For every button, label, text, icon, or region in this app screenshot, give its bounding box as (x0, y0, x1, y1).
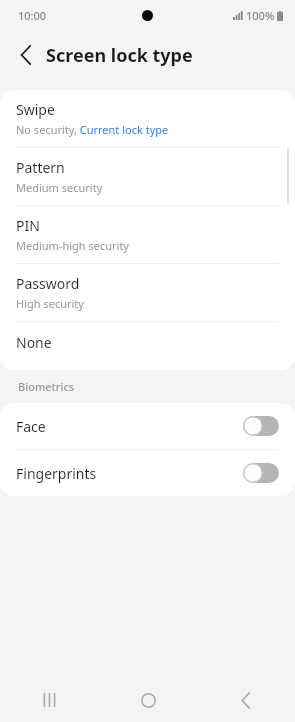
staticText: Password (16, 274, 80, 293)
staticText: Swipe (16, 100, 55, 119)
staticText: PIN (16, 216, 40, 235)
staticText: Screen lock type (46, 43, 193, 68)
button[interactable]: Swipe (0, 90, 295, 147)
staticText: Medium-high security (16, 238, 129, 253)
staticText: No security, Current lock type (16, 122, 169, 137)
button[interactable]: Fingerprints (0, 450, 295, 496)
staticText: 100% (246, 8, 275, 23)
button[interactable]: Home (99, 678, 197, 722)
button[interactable]: Recents (0, 678, 99, 722)
staticText: None (16, 333, 52, 352)
staticText: Biometrics (18, 379, 75, 394)
button[interactable]: PIN (0, 206, 295, 263)
staticText: High security (16, 296, 84, 311)
button[interactable]: None (0, 322, 295, 362)
button[interactable]: Password (0, 264, 295, 321)
button[interactable]: Pattern (0, 148, 295, 205)
button[interactable]: Back (197, 678, 295, 722)
staticText: 10:00 (18, 8, 47, 23)
staticText: Face (16, 417, 46, 436)
staticText: Pattern (16, 158, 65, 177)
staticText: Medium security (16, 180, 103, 195)
staticText: Fingerprints (16, 464, 97, 483)
button[interactable]: Face (0, 403, 295, 449)
button[interactable]: Back (8, 37, 44, 73)
